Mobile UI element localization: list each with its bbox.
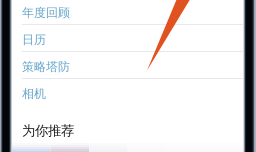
staticText: 策略塔防 [22, 59, 70, 74]
button[interactable]: 日历 [0, 25, 256, 52]
button[interactable]: 年度回顾 [0, 0, 256, 25]
staticText: 相机 [22, 86, 46, 101]
button[interactable]: 策略塔防 [0, 52, 256, 79]
button[interactable]: 相机 [0, 79, 256, 106]
staticText: 日历 [22, 32, 46, 47]
staticText: 年度回顾 [22, 5, 70, 20]
staticText: 为你推荐 [22, 123, 74, 139]
button[interactable]: 为你推荐 [0, 106, 256, 143]
